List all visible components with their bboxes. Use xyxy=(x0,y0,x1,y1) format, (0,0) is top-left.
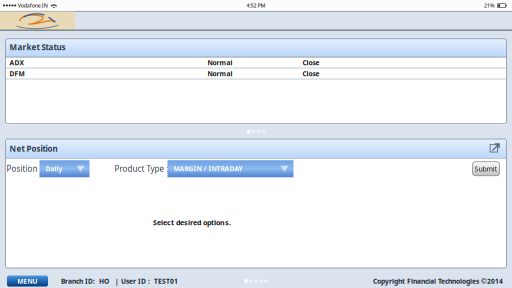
button[interactable]: Daily xyxy=(39,160,89,177)
button[interactable]: MENU xyxy=(7,276,48,287)
staticText: Copyright Financial Technologies ©2014 xyxy=(373,277,503,285)
staticText: MARGIN / INTRADAY xyxy=(173,164,242,173)
staticText: Net Position xyxy=(9,143,57,154)
button[interactable]: Expand panel xyxy=(489,143,499,154)
staticText: MENU xyxy=(17,277,37,285)
staticText: Normal xyxy=(207,69,232,78)
staticText: Position : xyxy=(6,163,41,174)
staticText: Close xyxy=(302,69,319,78)
staticText: ADX xyxy=(9,58,23,67)
staticText: Daily xyxy=(45,164,62,173)
staticText: Branch ID: HO | User ID : TEST01 xyxy=(61,277,178,285)
staticText: 4:52 PM xyxy=(246,2,265,9)
button[interactable]: Submit xyxy=(472,162,499,176)
staticText: Market Status xyxy=(9,42,65,52)
staticText: Select desired options. xyxy=(153,218,231,227)
staticText: 21% xyxy=(484,2,495,9)
staticText: Product Type : xyxy=(114,163,168,174)
button[interactable]: MARGIN / INTRADAY xyxy=(167,160,293,177)
staticText: DFM xyxy=(9,69,24,78)
staticText: Submit xyxy=(474,164,497,173)
staticText: Close xyxy=(302,58,319,67)
staticText: Vodafone IN xyxy=(18,2,48,9)
staticText: Normal xyxy=(207,58,232,67)
